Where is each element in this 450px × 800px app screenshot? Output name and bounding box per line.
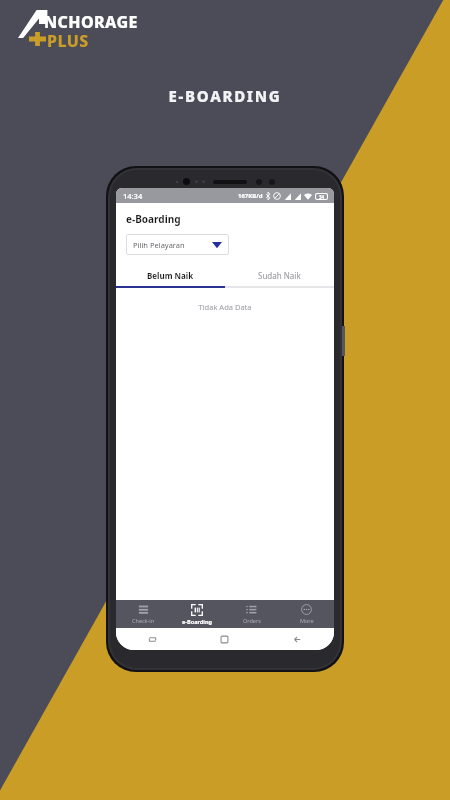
staticText: Tidak Ada Data <box>116 302 334 312</box>
staticText: 34 <box>319 194 325 200</box>
button[interactable]: e-Boarding <box>170 600 224 628</box>
staticText: e-Boarding <box>182 618 212 625</box>
staticText: Sudah Naik <box>258 270 301 281</box>
staticText: More <box>300 617 314 624</box>
button[interactable]: Orders <box>224 600 279 628</box>
button[interactable]: Pilih Pelayaran <box>126 234 229 255</box>
button[interactable]: Check-in <box>116 600 170 628</box>
staticText: NCHORAGE <box>44 11 138 33</box>
button[interactable]: Back <box>261 628 334 650</box>
staticText: Check-in <box>132 617 155 624</box>
button[interactable]: Home <box>188 628 261 650</box>
staticText: 14:34 <box>123 191 143 201</box>
staticText: Pilih Pelayaran <box>133 240 185 250</box>
button[interactable]: Recent apps <box>116 628 188 650</box>
button[interactable]: More <box>279 600 334 628</box>
staticText: e-Boarding <box>126 212 181 226</box>
button[interactable]: Sudah Naik <box>225 264 334 286</box>
staticText: E-BOARDING <box>0 86 450 106</box>
staticText: Belum Naik <box>147 270 194 281</box>
staticText: PLUS <box>47 30 89 52</box>
staticText: 167KB/d <box>238 192 263 200</box>
button[interactable]: Belum Naik <box>116 264 225 286</box>
staticText: Orders <box>243 617 261 624</box>
